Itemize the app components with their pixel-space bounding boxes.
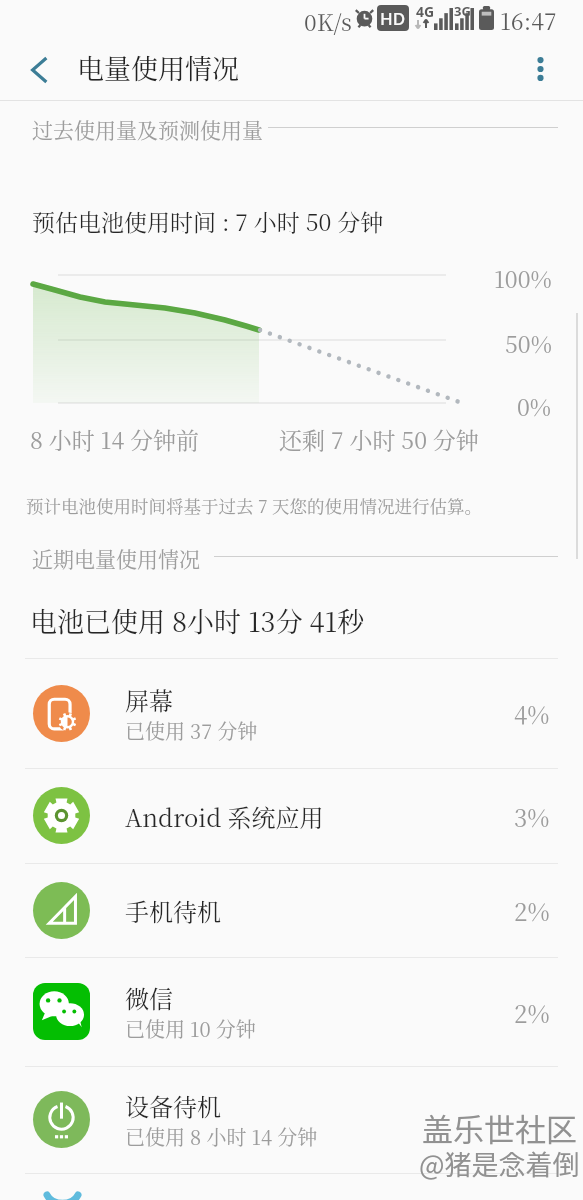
staticText: 2%: [514, 995, 550, 1029]
staticText: 3G: [454, 2, 471, 20]
staticText: 手机待机: [125, 893, 221, 927]
staticText: 设备待机: [125, 1088, 221, 1122]
staticText: 4%: [514, 696, 550, 730]
staticText: 4G: [416, 2, 435, 21]
button[interactable]: 微信: [0, 957, 583, 1066]
staticText: 已使用 37 分钟: [125, 716, 258, 745]
staticText: 电池已使用 8小时 13分 41秒: [30, 601, 365, 640]
staticText: 屏幕: [125, 682, 173, 716]
staticText: 过去使用量及预测使用量: [32, 114, 263, 144]
button[interactable]: Android 系统应用: [0, 768, 583, 863]
staticText: @猪是念着倒: [419, 1144, 580, 1183]
staticText: 50%: [505, 327, 552, 360]
button[interactable]: 手机待机: [0, 863, 583, 957]
staticText: 还剩 7 小时 50 分钟: [279, 423, 479, 456]
button[interactable]: Recents: [0, 1174, 194, 1200]
button[interactable]: 屏幕: [0, 658, 583, 768]
staticText: 预估电池使用时间 : 7 小时 50 分钟: [32, 205, 384, 238]
staticText: 16:47: [500, 4, 557, 37]
staticText: 电量使用情况: [77, 48, 239, 87]
staticText: 8 小时 14 分钟前: [30, 423, 200, 456]
staticText: Android 系统应用: [125, 799, 324, 833]
staticText: 已使用 8 小时 14 分钟: [125, 1122, 318, 1151]
staticText: 0K/s: [304, 5, 352, 38]
button[interactable]: Back: [10, 42, 68, 97]
staticText: 微信: [125, 980, 173, 1014]
staticText: 已使用 10 分钟: [125, 1014, 256, 1043]
staticText: 100%: [494, 262, 552, 295]
staticText: HD: [380, 7, 406, 30]
button[interactable]: 设备待机: [0, 1066, 583, 1173]
staticText: 2%: [514, 893, 550, 927]
staticText: 0%: [517, 390, 552, 423]
button[interactable]: More options: [511, 40, 569, 98]
staticText: 近期电量使用情况: [32, 543, 200, 573]
staticText: 盖乐世社区: [422, 1105, 577, 1150]
staticText: 3%: [514, 799, 550, 833]
staticText: 预计电池使用时间将基于过去 7 天您的使用情况进行估算。: [26, 493, 483, 518]
